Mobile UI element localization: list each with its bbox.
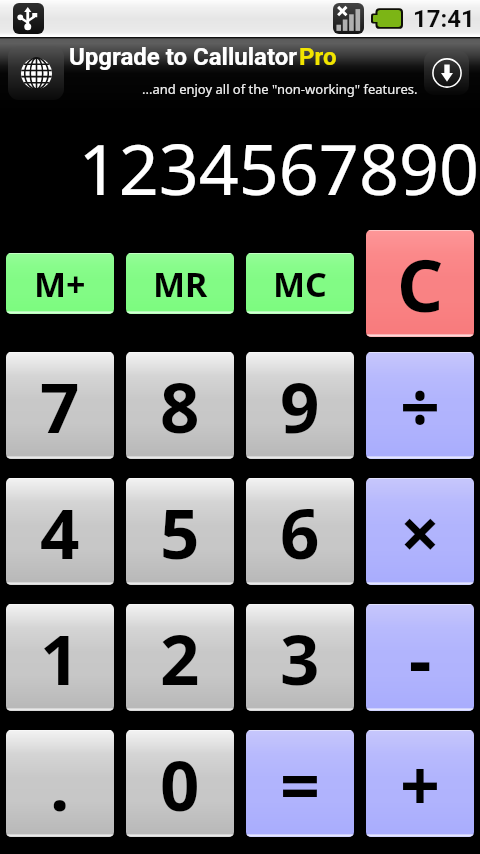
staticText: Pro [299,43,337,71]
button[interactable]: MC [246,253,354,314]
button[interactable]: Open web page [8,46,64,100]
button[interactable]: + [366,730,474,837]
button[interactable]: 3 [246,604,354,711]
staticText: 5 [160,485,200,579]
staticText: 7 [40,359,80,453]
button[interactable]: - [366,604,474,711]
button[interactable]: Open web page [0,38,480,112]
button[interactable]: ÷ [366,352,474,459]
staticText: + [400,736,441,831]
button[interactable]: 8 [126,352,234,459]
button[interactable]: . [6,730,114,837]
button[interactable]: = [246,730,354,837]
other: Battery [371,7,403,30]
button[interactable]: 1 [6,604,114,711]
staticText: M+ [34,261,86,307]
other: USB connected [13,3,44,34]
button[interactable]: 5 [126,478,234,585]
button[interactable]: 6 [246,478,354,585]
button[interactable]: × [366,478,474,585]
button[interactable]: 0 [126,730,234,837]
staticText: Upgrade to Callulator [69,43,298,71]
button[interactable]: C [366,230,474,337]
staticText: 8 [160,359,200,453]
staticText: 0 [160,737,200,831]
button[interactable]: 4 [6,478,114,585]
other: No signal [333,3,364,34]
staticText: = [280,736,321,831]
staticText: 1 [40,611,80,705]
staticText: 6 [280,485,320,579]
button[interactable]: MR [126,253,234,314]
staticText: C [397,235,444,333]
button[interactable]: M+ [6,253,114,314]
staticText: MC [273,261,327,307]
staticText: ...and enjoy all of the "non-working" fe… [142,80,418,98]
staticText: ÷ [400,358,441,453]
button[interactable]: 9 [246,352,354,459]
staticText: 3 [280,611,320,705]
staticText: 4 [40,485,80,579]
staticText: 2 [160,611,200,705]
staticText: MR [153,261,208,307]
button[interactable]: 7 [6,352,114,459]
staticText: . [50,737,70,831]
staticText: 1234567890 [78,120,479,215]
button[interactable]: 2 [126,604,234,711]
button[interactable]: Download [424,51,469,95]
staticText: × [400,484,441,579]
staticText: 9 [280,359,320,453]
staticText: 17:41 [413,5,475,33]
staticText: - [409,610,432,705]
